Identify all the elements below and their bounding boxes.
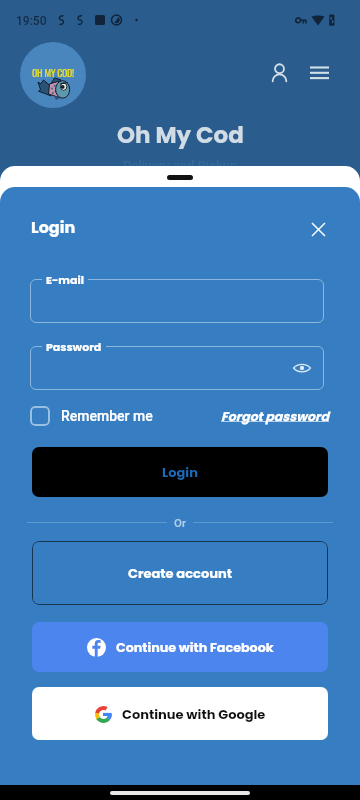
button[interactable]: Remember me — [30, 406, 153, 426]
button[interactable]: Continue with Google — [32, 687, 328, 740]
button[interactable]: Login — [32, 447, 328, 497]
staticText: Login — [31, 216, 76, 238]
button[interactable]: Menu — [304, 57, 334, 87]
button[interactable]: Oh My Cod logo — [20, 42, 86, 108]
button[interactable]: Continue with Facebook — [32, 622, 328, 672]
staticText: Login — [162, 463, 198, 481]
staticText: Oh My Cod — [117, 119, 244, 151]
staticText: OH MY COD! — [32, 65, 74, 80]
staticText: Forgot password — [221, 408, 329, 425]
staticText: E-mail — [46, 272, 84, 287]
button[interactable]: Close — [305, 216, 331, 242]
button[interactable]: Create account — [32, 541, 328, 605]
staticText: Password — [46, 339, 102, 354]
button[interactable] — [30, 279, 324, 323]
staticText: Create account — [128, 564, 232, 582]
button[interactable] — [30, 346, 324, 390]
staticText: Delivery and Pickup — [123, 158, 238, 173]
staticText: Continue with Google — [122, 705, 266, 723]
button[interactable]: Login — [31, 216, 76, 238]
button[interactable]: Forgot password — [221, 408, 329, 425]
button[interactable]: Account — [264, 57, 294, 87]
staticText: Remember me — [61, 408, 153, 424]
button[interactable]: Show password — [291, 357, 313, 379]
staticText: 19:50 — [16, 14, 47, 28]
staticText: Or — [174, 516, 186, 529]
staticText: Continue with Facebook — [116, 639, 274, 657]
